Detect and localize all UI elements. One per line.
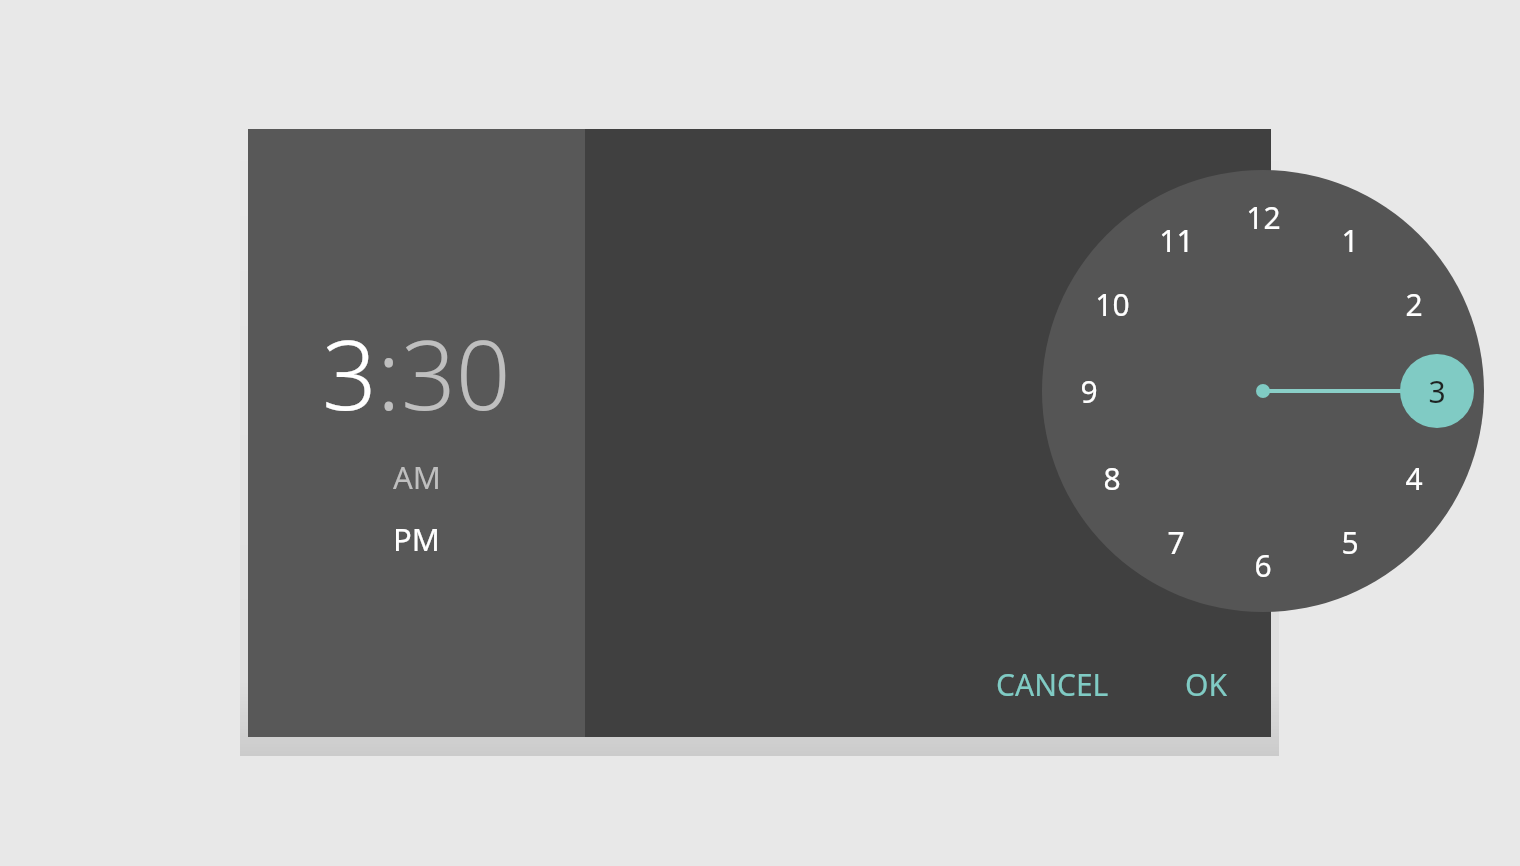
- button[interactable]: 2: [1388, 278, 1440, 330]
- staticText: 7: [1167, 522, 1185, 563]
- button[interactable]: CANCEL: [982, 654, 1123, 715]
- button[interactable]: 3: [1411, 365, 1463, 417]
- staticText: 6: [1254, 545, 1272, 586]
- staticText: CANCEL: [996, 664, 1109, 705]
- staticText: 2: [1405, 284, 1423, 325]
- button[interactable]: 7: [1150, 516, 1202, 568]
- button[interactable]: 5: [1324, 516, 1376, 568]
- staticText: 3: [1428, 371, 1446, 412]
- staticText: 4: [1405, 458, 1423, 499]
- staticText: 12: [1246, 197, 1281, 238]
- staticText: OK: [1185, 664, 1227, 705]
- staticText: 5: [1341, 522, 1359, 563]
- button[interactable]: OK: [1171, 654, 1241, 715]
- staticText: 1: [1341, 220, 1359, 261]
- button[interactable]: 9: [1063, 365, 1115, 417]
- staticText: 9: [1080, 371, 1098, 412]
- staticText: AM: [393, 456, 441, 498]
- staticText: 8: [1103, 458, 1121, 499]
- button[interactable]: 4: [1388, 452, 1440, 504]
- button[interactable]: 12: [1237, 191, 1289, 243]
- button[interactable]: 3: [322, 307, 377, 438]
- button[interactable]: 8: [1086, 452, 1138, 504]
- button[interactable]: 1: [1324, 214, 1376, 266]
- button[interactable]: PM: [379, 516, 454, 562]
- button[interactable]: 30: [401, 307, 511, 438]
- staticText: 11: [1159, 220, 1194, 261]
- staticText: :: [377, 307, 401, 438]
- button[interactable]: 10: [1086, 278, 1138, 330]
- staticText: 10: [1095, 284, 1130, 325]
- button[interactable]: 11: [1150, 214, 1202, 266]
- button[interactable]: 6: [1237, 539, 1289, 591]
- button[interactable]: AM: [379, 454, 455, 500]
- staticText: PM: [393, 518, 440, 560]
